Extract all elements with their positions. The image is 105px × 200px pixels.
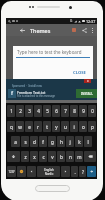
- staticText: b: [60, 154, 63, 160]
- button[interactable]: 123?: [7, 166, 16, 177]
- button[interactable]: d: [30, 136, 38, 147]
- staticText: p: [91, 124, 94, 130]
- staticText: r: [37, 124, 39, 130]
- button[interactable]: l: [84, 136, 92, 147]
- button[interactable]: h: [57, 136, 65, 147]
- staticText: u: [64, 124, 67, 130]
- button[interactable]: Move cursor right: [61, 166, 70, 177]
- staticText: 0: [91, 108, 94, 114]
- button[interactable]: 7: [61, 105, 69, 117]
- button[interactable]: r: [34, 121, 42, 132]
- button[interactable]: e: [25, 121, 33, 132]
- staticText: Themes: [30, 27, 51, 34]
- staticText: 123?: [8, 170, 15, 174]
- staticText: a: [14, 139, 17, 145]
- staticText: f: [42, 139, 44, 145]
- button[interactable]: w: [16, 121, 24, 132]
- button[interactable]: p: [88, 121, 96, 132]
- button[interactable]: k: [75, 136, 83, 147]
- button[interactable]: 4: [34, 105, 42, 117]
- staticText: Type here to test the keyboard: [17, 49, 82, 55]
- staticText: n: [69, 154, 72, 160]
- staticText: q: [10, 124, 13, 130]
- button[interactable]: a: [11, 136, 20, 147]
- staticText: g: [51, 139, 54, 145]
- staticText: e: [28, 124, 31, 130]
- staticText: x: [87, 79, 89, 83]
- staticText: Freedom Text.txt: [17, 90, 46, 95]
- button[interactable]: 0: [88, 105, 96, 117]
- button[interactable]: Close ad: [84, 79, 91, 83]
- staticText: m: [77, 154, 82, 160]
- staticText: 9: [82, 108, 85, 114]
- button[interactable]: 2: [16, 105, 24, 117]
- button[interactable]: m: [75, 151, 83, 162]
- staticText: o: [82, 124, 85, 130]
- button[interactable]: Apply theme: [69, 24, 79, 36]
- button[interactable]: t: [43, 121, 51, 132]
- button[interactable]: CLOSE: [69, 69, 89, 77]
- staticText: 3: [28, 108, 31, 114]
- button[interactable]: Share: [79, 24, 89, 36]
- button[interactable]: b: [57, 151, 65, 162]
- staticText: f: [11, 90, 13, 97]
- button[interactable]: Enter: [87, 166, 96, 177]
- button[interactable]: Back: [16, 24, 28, 36]
- button[interactable]: Backspace: [84, 151, 96, 162]
- button[interactable]: o: [79, 121, 87, 132]
- button[interactable]: 1: [7, 105, 15, 117]
- staticText: l: [87, 139, 89, 145]
- staticText: Sponsored · Install now: [12, 84, 42, 88]
- button[interactable]: q: [7, 121, 15, 132]
- button[interactable]: x: [30, 151, 38, 162]
- staticText: j: [69, 139, 71, 145]
- button[interactable]: Home: [35, 185, 70, 192]
- button[interactable]: .: [71, 166, 78, 177]
- staticText: 8: [73, 108, 76, 114]
- button[interactable]: Shift: [7, 151, 20, 162]
- staticText: z: [24, 154, 27, 160]
- button[interactable]: 8: [70, 105, 78, 117]
- staticText: CLOSE: [73, 70, 86, 76]
- button[interactable]: y: [52, 121, 60, 132]
- button[interactable]: g: [48, 136, 56, 147]
- staticText: i: [73, 124, 75, 130]
- staticText: English Nordic: [44, 168, 54, 175]
- staticText: 2: [19, 108, 22, 114]
- staticText: s: [24, 139, 27, 145]
- button[interactable]: n: [66, 151, 74, 162]
- staticText: 12:37: [86, 19, 96, 24]
- button[interactable]: 6: [52, 105, 60, 117]
- staticText: k: [78, 139, 81, 145]
- staticText: 5: [46, 108, 49, 114]
- button[interactable]: ?: [79, 166, 86, 177]
- staticText: w: [18, 124, 22, 130]
- staticText: c: [42, 154, 45, 160]
- button[interactable]: INSTALL: [76, 89, 97, 98]
- staticText: ?: [82, 169, 84, 175]
- button[interactable]: 9: [79, 105, 87, 117]
- button[interactable]: More options: [89, 24, 96, 36]
- button[interactable]: Move cursor left: [27, 166, 36, 177]
- button[interactable]: z: [21, 151, 29, 162]
- button[interactable]: v: [48, 151, 56, 162]
- button[interactable]: 3: [25, 105, 33, 117]
- button[interactable]: f: [39, 136, 47, 147]
- button[interactable]: English Nordic: [37, 166, 60, 177]
- staticText: 1: [10, 108, 13, 114]
- button[interactable]: j: [66, 136, 74, 147]
- button[interactable]: c: [39, 151, 47, 162]
- staticText: h: [60, 139, 63, 145]
- button[interactable]: 5: [43, 105, 51, 117]
- button[interactable]: i: [70, 121, 78, 132]
- button[interactable]: u: [61, 121, 69, 132]
- staticText: d: [33, 139, 36, 145]
- staticText: G: [70, 19, 73, 23]
- staticText: 4: [37, 108, 40, 114]
- button[interactable]: s: [21, 136, 29, 147]
- staticText: 6: [55, 108, 58, 114]
- button[interactable]: Emoji: [17, 166, 26, 177]
- staticText: t: [46, 124, 48, 130]
- staticText: INSTALL: [81, 92, 93, 96]
- staticText: .: [74, 169, 76, 175]
